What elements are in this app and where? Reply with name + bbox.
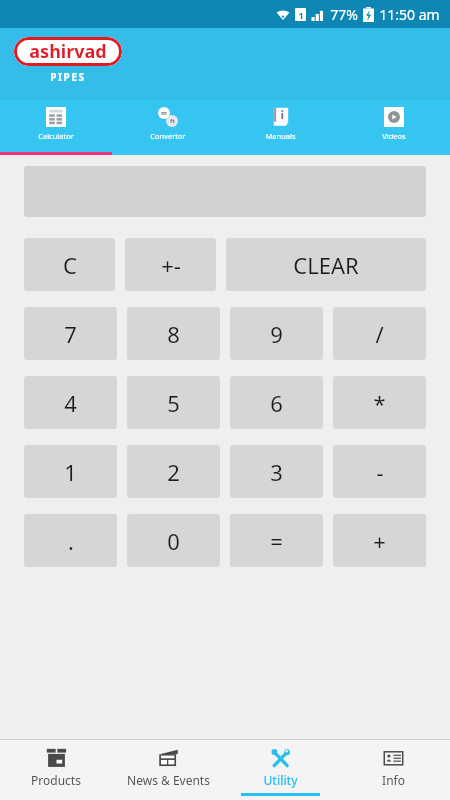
button[interactable]: * [333,376,426,429]
staticText: 2 [167,457,180,487]
staticText: * [373,388,386,418]
staticText: 0 [167,526,180,556]
button[interactable]: Manuals [224,100,337,152]
staticText: News & Events [127,772,210,788]
other: Products [46,748,67,769]
button[interactable]: 0 [127,514,220,567]
staticText: ashirvad [29,39,107,64]
other: News and Events [158,748,179,769]
button[interactable]: News and Events [112,740,224,800]
staticText: 4 [64,388,77,418]
button[interactable]: 3 [230,445,323,498]
staticText: Calculator [38,131,74,141]
staticText: Convertor [150,131,186,141]
staticText: +- [161,250,181,280]
button[interactable]: CLEAR [226,238,426,291]
button[interactable]: - [333,445,426,498]
staticText: Videos [382,131,406,141]
staticText: 7 [64,319,77,349]
button[interactable]: Calculator [0,100,112,152]
staticText: m [161,109,167,117]
button[interactable]: / [333,307,426,360]
staticText: / [375,319,384,349]
staticText: 6 [270,388,283,418]
staticText: - [376,457,384,487]
staticText: Products [31,772,81,788]
staticText: 9 [270,319,283,349]
button[interactable]: Info [337,740,450,800]
button[interactable]: 1 [24,445,117,498]
button[interactable]: Products [0,740,112,800]
button[interactable]: 5 [127,376,220,429]
staticText: 1 [64,457,77,487]
staticText: Info [382,772,405,788]
button[interactable]: + [333,514,426,567]
button[interactable]: . [24,514,117,567]
staticText: . [68,526,74,556]
button[interactable]: +- [125,238,216,291]
button[interactable]: 8 [127,307,220,360]
staticText: ft [170,117,175,125]
button[interactable]: 6 [230,376,323,429]
staticText: 5 [167,388,180,418]
staticText: 3 [270,457,283,487]
other: Utility [270,748,291,769]
button[interactable]: = [230,514,323,567]
staticText: CLEAR [293,250,359,280]
button[interactable]: 9 [230,307,323,360]
staticText: = [270,526,283,556]
staticText: 77% [330,5,358,24]
button[interactable]: 4 [24,376,117,429]
staticText: PIPES [50,70,86,84]
button[interactable]: 7 [24,307,117,360]
other: Info [383,748,404,769]
staticText: 1 [298,9,304,21]
staticText: 8 [167,319,180,349]
staticText: + [373,526,386,556]
staticText: C [63,250,77,280]
button[interactable]: 2 [127,445,220,498]
button[interactable]: C [24,238,115,291]
button[interactable]: Videos [337,100,450,152]
staticText: Manuals [265,131,296,141]
button[interactable]: m [112,100,224,152]
button[interactable]: Utility [224,740,337,800]
staticText: 11:50 am [379,5,440,24]
staticText: Utility [263,772,298,788]
